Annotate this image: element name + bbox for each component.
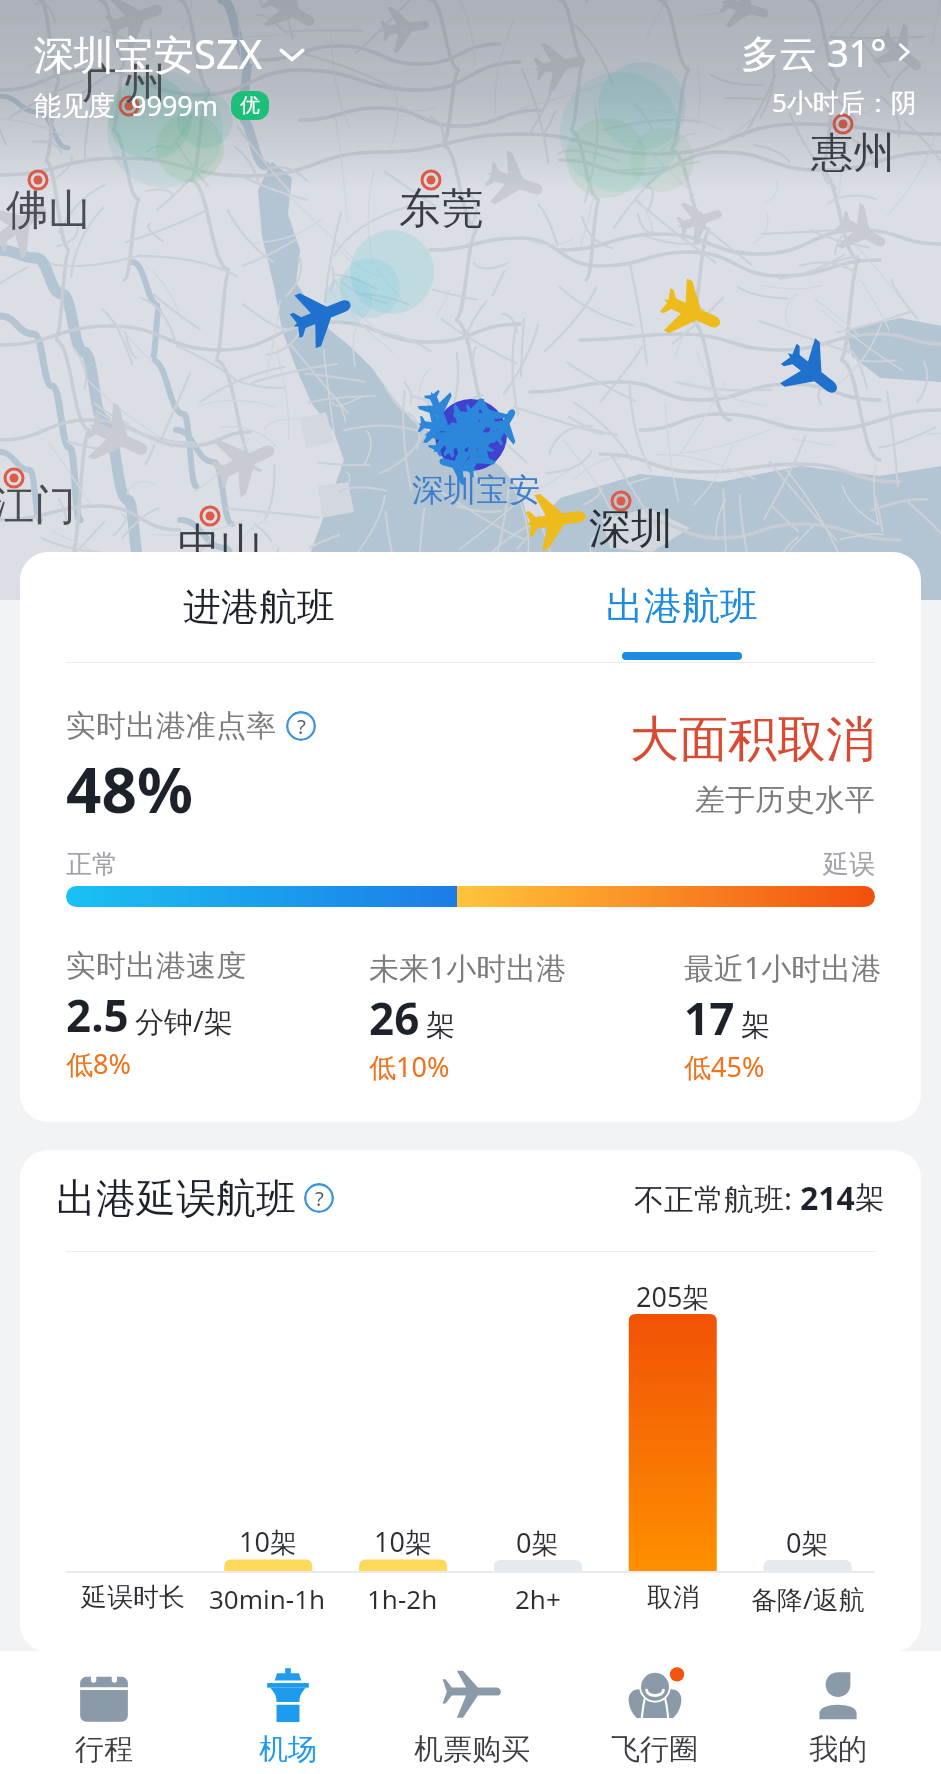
button[interactable]: 深圳宝安SZX (34, 26, 307, 81)
button[interactable]: 飞行圈 (563, 1651, 746, 1774)
staticText: 2.5 (66, 985, 129, 1045)
staticText: 1h-2h (367, 1581, 438, 1616)
staticText: 205架 (636, 1278, 710, 1315)
button[interactable]: 多云 31° (741, 26, 917, 120)
staticText: ? (297, 712, 306, 740)
staticText: 10架 (374, 1523, 432, 1560)
staticText: 48% (66, 747, 193, 831)
staticText: 延误时长 (81, 1581, 185, 1614)
staticText: 214 (800, 1176, 855, 1220)
staticText: 机票购买 (414, 1731, 530, 1768)
staticText: 10架 (239, 1523, 297, 1560)
staticText: 差于历史水平 (695, 781, 875, 819)
staticText: 17 (684, 988, 735, 1048)
staticText: 未来1小时出港 (369, 947, 567, 988)
staticText: 机场 (259, 1731, 317, 1768)
staticText: 延误 (823, 848, 875, 881)
staticText: 5小时后：阴 (772, 84, 917, 120)
staticText: 9999m (131, 87, 219, 124)
staticText: 低8% (66, 1045, 131, 1082)
staticText: 架 (855, 1179, 885, 1217)
staticText: 多云 31° (741, 26, 887, 78)
staticText: 备降/返航 (751, 1581, 865, 1617)
button[interactable]: Help (286, 711, 316, 741)
staticText: 广州 (82, 58, 166, 111)
staticText: 2h+ (515, 1581, 561, 1616)
staticText: 实时出港速度 (66, 947, 246, 985)
staticText: 26 (369, 988, 420, 1048)
staticText: 出港延误航班 (56, 1173, 296, 1223)
staticText: 架 (741, 1007, 770, 1044)
staticText: 江门 (0, 480, 76, 533)
staticText: 正常 (66, 848, 118, 881)
staticText: 大面积取消 (630, 709, 875, 771)
staticText: 惠州 (811, 127, 895, 180)
staticText: 优 (240, 93, 260, 118)
staticText: 深圳宝安 (412, 470, 540, 510)
button[interactable]: 机场 (196, 1651, 380, 1774)
staticText: 出港航班 (606, 582, 758, 630)
staticText: 能见度 (34, 89, 115, 123)
staticText: 30min-1h (209, 1581, 326, 1616)
button[interactable]: 出港航班 (470, 552, 894, 662)
staticText: 不正常航班: (634, 1178, 800, 1219)
staticText: 低10% (369, 1048, 450, 1085)
staticText: 我的 (809, 1731, 867, 1768)
staticText: 0架 (786, 1524, 829, 1561)
staticText: 东莞 (399, 183, 483, 236)
staticText: 行程 (75, 1731, 133, 1768)
button[interactable]: Help (304, 1183, 334, 1213)
staticText: 取消 (647, 1581, 699, 1614)
staticText: 低45% (684, 1048, 765, 1085)
button[interactable]: 机票购买 (380, 1651, 563, 1774)
staticText: 0架 (516, 1524, 559, 1561)
staticText: 深圳 (589, 503, 673, 556)
staticText: 深圳宝安SZX (34, 26, 263, 81)
staticText: 最近1小时出港 (684, 947, 882, 988)
staticText: 中山 (178, 518, 262, 571)
staticText: ? (315, 1184, 324, 1212)
staticText: 飞行圈 (611, 1731, 698, 1768)
button[interactable]: 进港航班 (47, 552, 470, 662)
staticText: 进港航班 (183, 583, 335, 631)
staticText: 分钟/架 (135, 1001, 233, 1041)
staticText: 架 (426, 1007, 455, 1044)
button[interactable]: 行程 (12, 1651, 196, 1774)
button[interactable]: 我的 (746, 1651, 929, 1774)
staticText: 佛山 (6, 184, 90, 237)
staticText: 实时出港准点率 (66, 707, 276, 745)
